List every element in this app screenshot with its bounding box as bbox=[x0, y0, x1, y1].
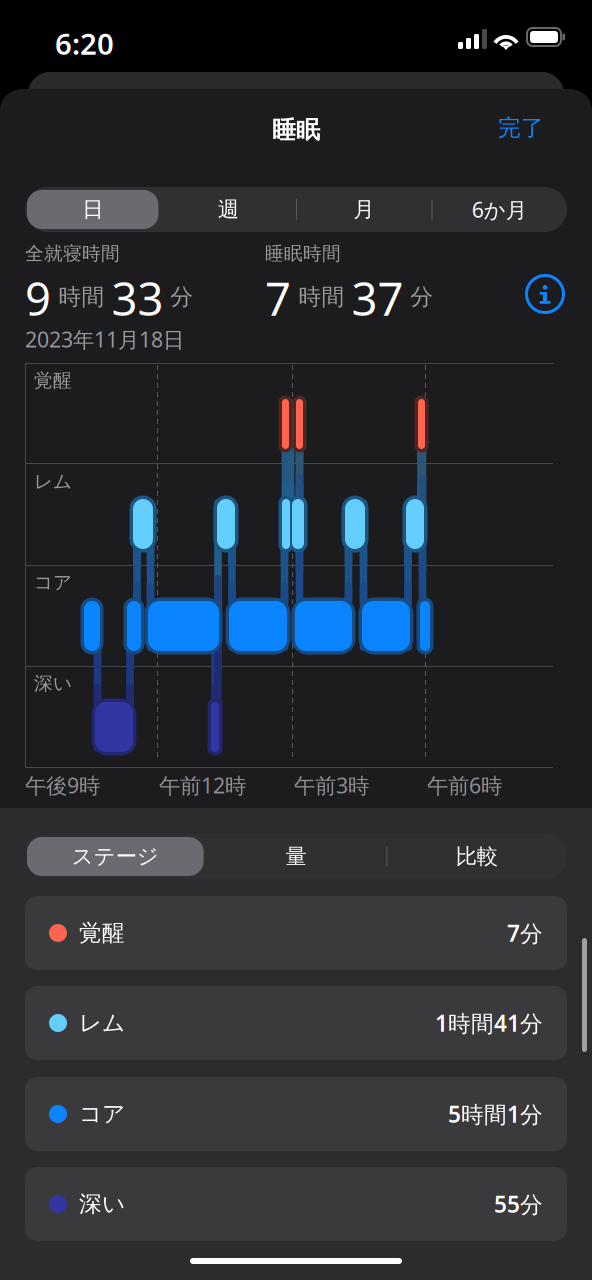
staticText: 分 bbox=[170, 283, 193, 311]
button[interactable]: 詳細 bbox=[523, 272, 567, 316]
button[interactable]: ステージ bbox=[25, 834, 206, 879]
button[interactable]: 週 bbox=[160, 187, 296, 232]
staticText: 6か月 bbox=[472, 195, 527, 224]
staticText: 6:20 bbox=[55, 24, 114, 63]
staticText: 比較 bbox=[456, 843, 498, 870]
button[interactable]: 完了 bbox=[476, 106, 566, 150]
staticText: コア bbox=[79, 1100, 125, 1128]
staticText: 量 bbox=[285, 843, 306, 870]
button[interactable]: 比較 bbox=[386, 834, 567, 879]
staticText: 覚醒 bbox=[79, 919, 125, 947]
staticText: 37 bbox=[351, 268, 403, 328]
staticText: 覚醒 bbox=[34, 369, 72, 392]
staticText: コア bbox=[34, 571, 72, 594]
staticText: レム bbox=[34, 470, 72, 493]
staticText: 完了 bbox=[498, 114, 544, 142]
button[interactable]: 量 bbox=[206, 834, 386, 879]
staticText: ステージ bbox=[72, 843, 159, 870]
staticText: 午前12時 bbox=[159, 771, 246, 799]
staticText: 深い bbox=[79, 1190, 125, 1218]
button[interactable]: 深い bbox=[25, 1167, 567, 1241]
staticText: 9 bbox=[25, 268, 51, 328]
staticText: 5時間1分 bbox=[448, 1099, 543, 1129]
staticText: 全就寝時間 bbox=[25, 242, 120, 265]
staticText: 睡眠時間 bbox=[265, 242, 341, 265]
staticText: 7 bbox=[265, 268, 291, 328]
staticText: 分 bbox=[410, 283, 433, 311]
staticText: 深い bbox=[34, 672, 72, 695]
staticText: 午前6時 bbox=[427, 771, 502, 799]
staticText: 睡眠 bbox=[272, 115, 320, 145]
staticText: 時間 bbox=[58, 283, 104, 311]
button[interactable]: 6か月 bbox=[431, 187, 567, 232]
staticText: 1時間41分 bbox=[435, 1008, 543, 1038]
button[interactable]: 覚醒 bbox=[25, 896, 567, 970]
staticText: 33 bbox=[111, 268, 163, 328]
staticText: 7分 bbox=[507, 918, 543, 948]
button[interactable]: 月 bbox=[296, 187, 431, 232]
staticText: レム bbox=[79, 1009, 125, 1037]
button[interactable]: 日 bbox=[25, 187, 160, 232]
button[interactable]: コア bbox=[25, 1077, 567, 1151]
staticText: 午後9時 bbox=[25, 771, 100, 799]
staticText: 月 bbox=[353, 196, 374, 223]
staticText: 日 bbox=[82, 196, 103, 223]
button[interactable]: レム bbox=[25, 986, 567, 1060]
staticText: 午前3時 bbox=[294, 771, 369, 799]
staticText: 週 bbox=[218, 196, 239, 223]
staticText: 時間 bbox=[298, 283, 344, 311]
staticText: 2023年11月18日 bbox=[25, 325, 184, 353]
staticText: 55分 bbox=[494, 1189, 543, 1219]
